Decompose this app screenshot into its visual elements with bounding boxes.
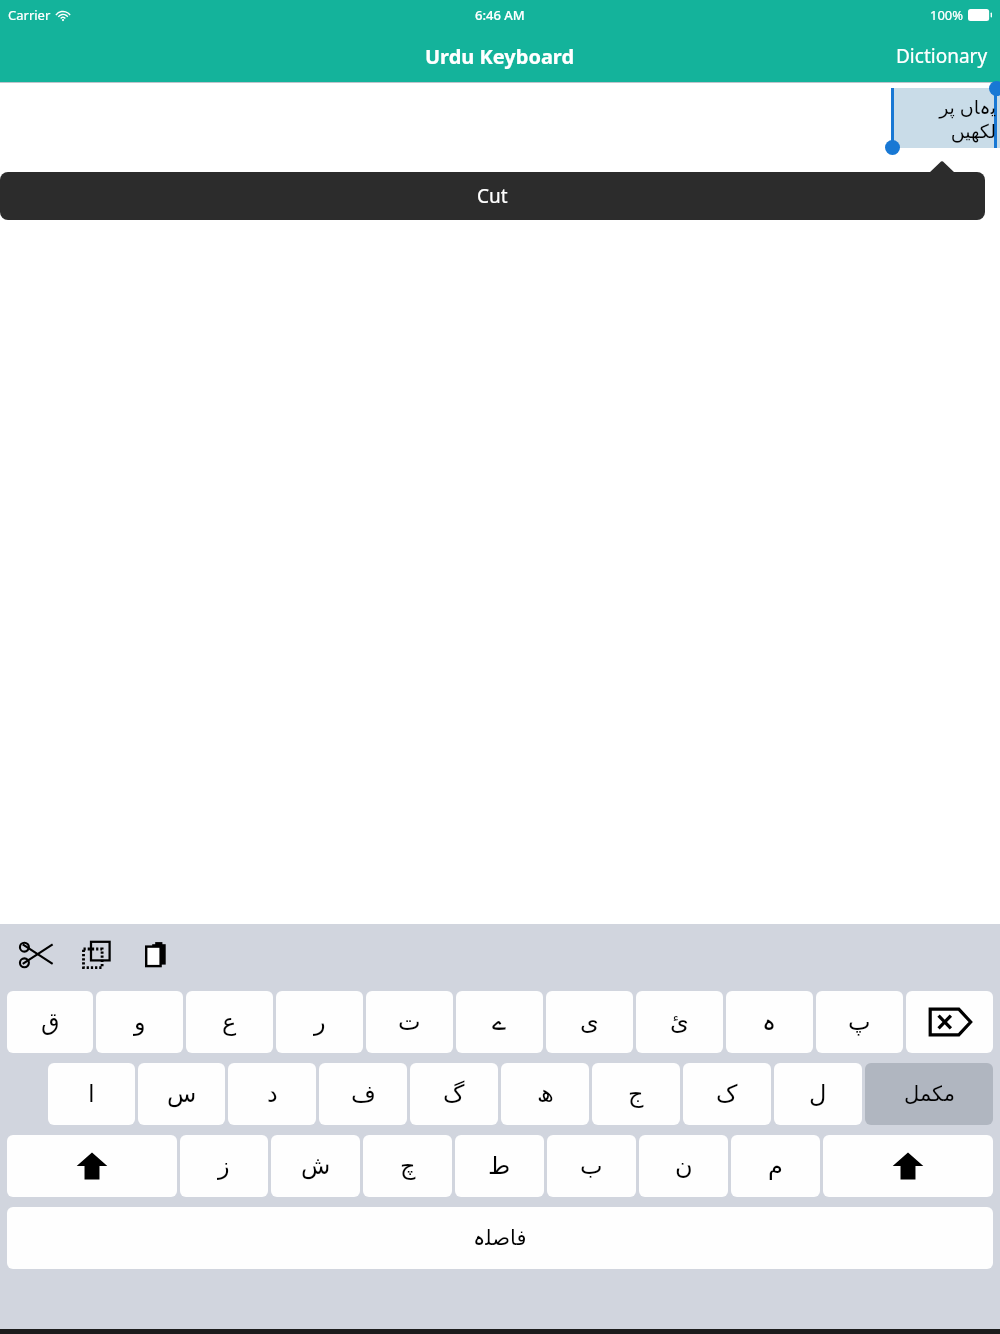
staticText: ط (488, 1152, 511, 1180)
button[interactable]: ا (48, 1063, 135, 1125)
staticText: مکمل (904, 1082, 955, 1106)
button[interactable]: ہ (726, 991, 813, 1053)
staticText: یہاں پر لکھیں (892, 94, 996, 142)
button[interactable]: Dictionary (884, 35, 1000, 77)
button[interactable]: ش (271, 1135, 360, 1197)
staticText: د (267, 1080, 278, 1108)
button[interactable]: Shift (7, 1135, 177, 1197)
button[interactable]: ے (456, 991, 543, 1053)
button[interactable]: ئ (636, 991, 723, 1053)
staticText: فاصلہ (473, 1226, 527, 1250)
staticText: ا (88, 1080, 95, 1108)
button[interactable]: ھ (501, 1063, 589, 1125)
staticText: م (768, 1152, 783, 1180)
staticText: Urdu Keyboard (425, 43, 575, 70)
button[interactable]: ط (455, 1135, 544, 1197)
staticText: گ (443, 1080, 465, 1108)
button[interactable]: س (138, 1063, 225, 1125)
button[interactable]: Cut (10, 928, 64, 982)
staticText: ئ (670, 1008, 689, 1036)
button[interactable]: ن (639, 1135, 728, 1197)
staticText: Dictionary (896, 43, 988, 69)
staticText: 6:46 AM (475, 6, 525, 24)
button[interactable]: Paste (130, 928, 184, 982)
staticText: ہ (762, 1008, 777, 1036)
button[interactable]: ب (547, 1135, 636, 1197)
button[interactable]: Backspace (906, 991, 993, 1053)
button[interactable]: م (731, 1135, 820, 1197)
button[interactable]: ک (683, 1063, 771, 1125)
button[interactable]: د (228, 1063, 316, 1125)
staticText: ل (809, 1080, 827, 1108)
button[interactable]: پ (816, 991, 903, 1053)
staticText: Carrier (8, 6, 51, 24)
staticText: ھ (537, 1080, 554, 1108)
staticText: 100% (930, 6, 964, 24)
staticText: ع (222, 1008, 237, 1036)
button[interactable]: ع (186, 991, 273, 1053)
button[interactable]: ر (276, 991, 363, 1053)
button[interactable]: یہاں پر لکھیں (888, 88, 1000, 148)
button[interactable]: ی (546, 991, 633, 1053)
staticText: س (167, 1080, 197, 1108)
staticText: ن (675, 1152, 693, 1180)
button[interactable]: فاصلہ (7, 1207, 993, 1269)
button[interactable]: ج (592, 1063, 680, 1125)
button[interactable]: ق (7, 991, 93, 1053)
button[interactable]: Shift (823, 1135, 993, 1197)
button[interactable]: گ (410, 1063, 498, 1125)
button[interactable]: ل (774, 1063, 862, 1125)
staticText: ج (628, 1080, 644, 1108)
staticText: ف (351, 1080, 376, 1108)
button[interactable]: مکمل (865, 1063, 993, 1125)
staticText: ق (41, 1008, 60, 1036)
button[interactable]: ف (319, 1063, 407, 1125)
staticText: ش (301, 1152, 331, 1180)
staticText: و (134, 1008, 146, 1036)
staticText: ت (398, 1008, 421, 1036)
button[interactable]: Cut (0, 172, 985, 220)
staticText: چ (400, 1152, 416, 1180)
button[interactable]: ز (180, 1135, 268, 1197)
button[interactable]: چ (363, 1135, 452, 1197)
button[interactable]: Copy (70, 928, 124, 982)
staticText: ے (492, 1008, 507, 1036)
staticText: پ (848, 1008, 871, 1036)
staticText: ز (218, 1152, 230, 1180)
staticText: ی (580, 1008, 599, 1036)
staticText: ب (580, 1152, 603, 1180)
staticText: Cut (477, 183, 508, 209)
button[interactable]: و (96, 991, 183, 1053)
button[interactable]: ت (366, 991, 453, 1053)
staticText: ر (314, 1008, 326, 1036)
staticText: ک (716, 1080, 738, 1108)
